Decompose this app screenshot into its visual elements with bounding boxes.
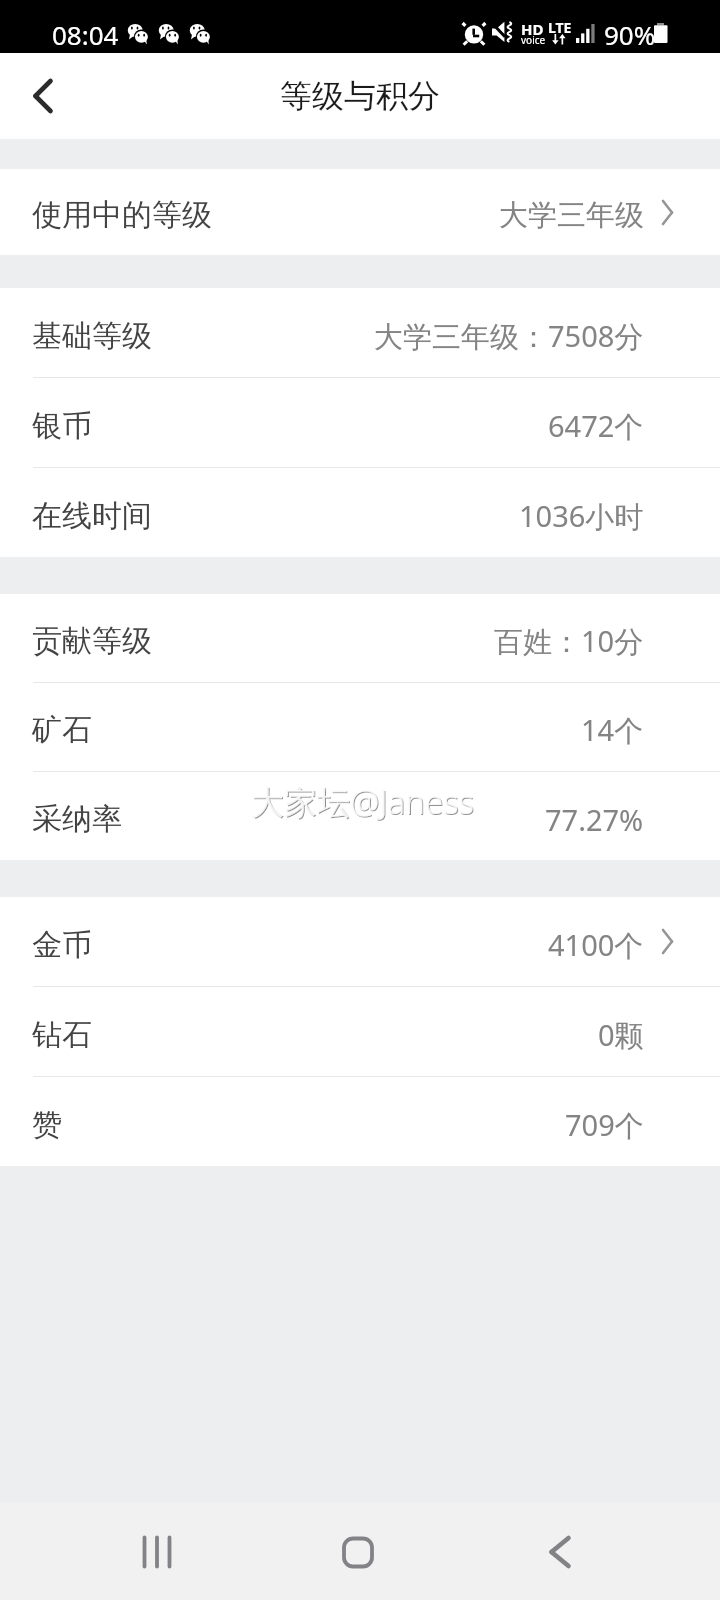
staticText: 使用中的等级	[32, 196, 212, 234]
button[interactable]: 钻石	[0, 987, 720, 1076]
staticText: 百姓：10分	[494, 621, 644, 661]
button[interactable]: Back	[500, 1503, 620, 1600]
staticText: 90%	[604, 17, 656, 52]
button[interactable]: 采纳率	[0, 772, 720, 860]
button[interactable]: 金币	[0, 897, 720, 986]
staticText: HD	[521, 19, 544, 39]
staticText: LTE	[548, 18, 572, 37]
staticText: voice	[521, 33, 546, 47]
button[interactable]: 基础等级	[0, 288, 720, 377]
staticText: 1036小时	[519, 496, 644, 536]
button[interactable]: 贡献等级	[0, 594, 720, 682]
button[interactable]: 矿石	[0, 683, 720, 771]
staticText: 0颗	[598, 1015, 644, 1055]
staticText: 14个	[581, 710, 644, 750]
staticText: 金币	[32, 926, 92, 964]
staticText: 大家坛@Janess	[252, 780, 476, 825]
staticText: 08:04	[52, 17, 119, 52]
staticText: 4100个	[548, 925, 644, 965]
staticText: 6472个	[548, 406, 644, 446]
staticText: 钻石	[32, 1016, 92, 1054]
staticText: 大家坛@Janess	[251, 779, 475, 824]
button[interactable]: 银币	[0, 378, 720, 467]
button[interactable]: Home	[298, 1503, 418, 1600]
staticText: 基础等级	[32, 317, 152, 355]
staticText: 等级与积分	[280, 76, 440, 116]
staticText: 77.27%	[545, 800, 644, 839]
staticText: 银币	[32, 407, 92, 445]
staticText: 709个	[565, 1105, 644, 1145]
button[interactable]: 赞	[0, 1077, 720, 1166]
staticText: 在线时间	[32, 497, 152, 535]
button[interactable]: 在线时间	[0, 468, 720, 557]
staticText: 大学三年级	[499, 197, 644, 234]
staticText: 矿石	[32, 711, 92, 749]
button[interactable]: Recent apps	[97, 1503, 217, 1600]
staticText: 采纳率	[32, 800, 122, 838]
staticText: 大学三年级：7508分	[374, 316, 644, 356]
staticText: 贡献等级	[32, 622, 152, 660]
staticText: 赞	[32, 1106, 62, 1144]
button[interactable]: 使用中的等级	[0, 169, 720, 255]
button[interactable]: Back	[0, 53, 86, 139]
